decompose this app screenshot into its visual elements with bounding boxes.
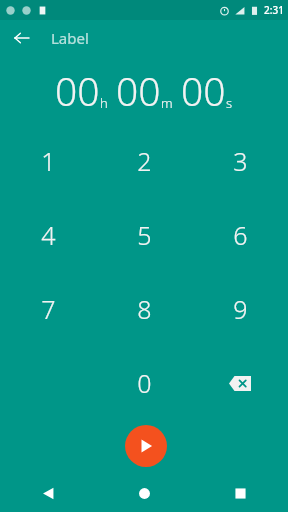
button[interactable]: 6	[192, 198, 288, 272]
button[interactable]: Back	[0, 475, 96, 512]
staticText: 2:31	[264, 3, 284, 17]
button[interactable]: 4	[0, 198, 96, 272]
staticText: 00	[181, 64, 226, 117]
button[interactable]: Recents	[192, 475, 288, 512]
staticText: 2	[137, 144, 152, 178]
staticText: 3	[233, 144, 248, 178]
button[interactable]: 3	[192, 124, 288, 198]
staticText: 8	[137, 292, 152, 326]
staticText: h	[100, 94, 108, 112]
staticText: 4	[41, 218, 56, 252]
staticText: 00	[116, 64, 161, 117]
staticText: 6	[233, 218, 248, 252]
staticText: 00	[55, 64, 100, 117]
button[interactable]: 5	[96, 198, 192, 272]
button[interactable]: Label	[51, 28, 89, 48]
button[interactable]: 0	[96, 346, 192, 420]
button[interactable]: Home	[96, 475, 192, 512]
staticText: m	[161, 94, 173, 112]
staticText: 9	[233, 292, 248, 326]
staticText: 1	[41, 144, 56, 178]
button[interactable]: 9	[192, 272, 288, 346]
button[interactable]: 7	[0, 272, 96, 346]
button[interactable]: 8	[96, 272, 192, 346]
staticText: 7	[41, 292, 56, 326]
staticText: s	[226, 94, 233, 112]
staticText: 5	[137, 218, 152, 252]
staticText: 0	[137, 366, 152, 400]
button[interactable]: Back	[8, 24, 36, 52]
button[interactable]: Backspace	[192, 346, 288, 420]
button[interactable]: 2	[96, 124, 192, 198]
button[interactable]: 1	[0, 124, 96, 198]
button[interactable]: Start	[125, 425, 167, 467]
